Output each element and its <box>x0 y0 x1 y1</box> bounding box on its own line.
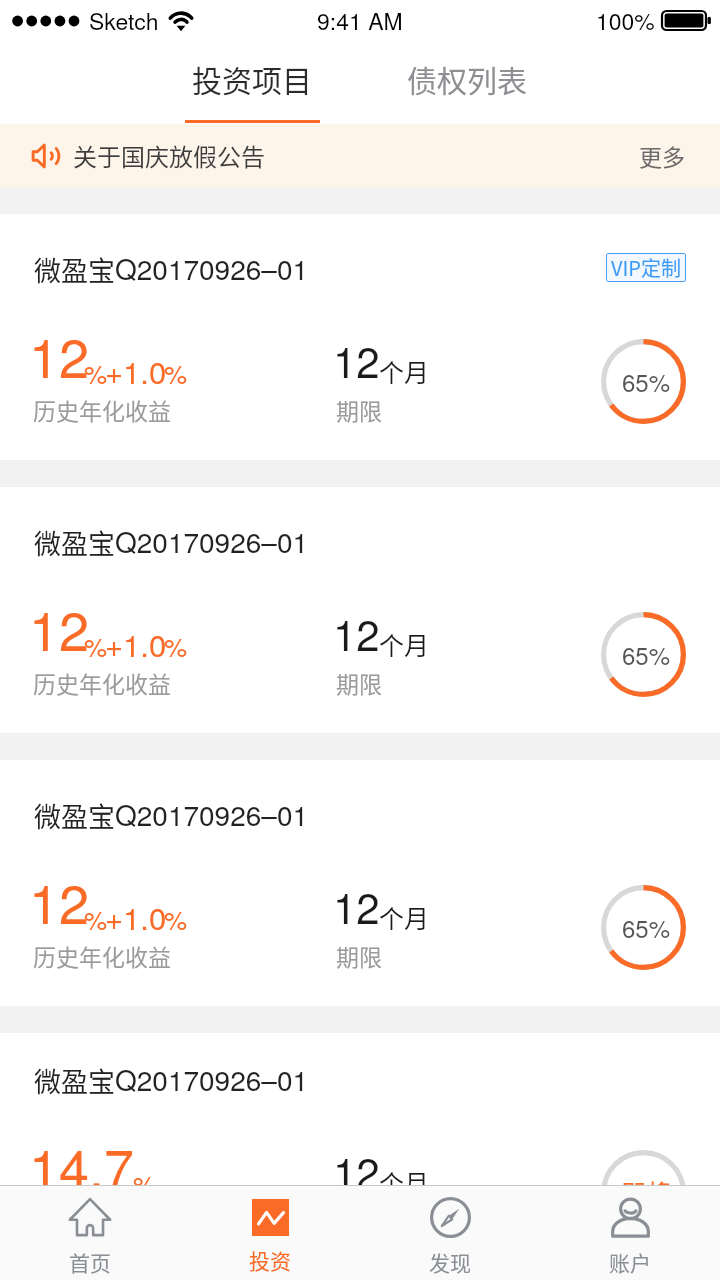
staticText: 更多 <box>639 139 685 172</box>
button[interactable]: 发现 <box>360 1186 540 1280</box>
staticText: +1.0 <box>105 894 167 938</box>
staticText: Q20170926–01 <box>115 248 309 288</box>
staticText: 个月 <box>379 353 430 389</box>
staticText: 微盈宝 <box>34 1061 115 1100</box>
staticText: 期限 <box>336 939 382 972</box>
staticText: 个月 <box>379 1164 430 1200</box>
button[interactable]: 微盈宝 <box>0 760 720 1006</box>
staticText: 9:41 AM <box>317 4 403 37</box>
staticText: Q20170926–01 <box>115 794 309 834</box>
staticText: 历史年化收益 <box>33 939 171 972</box>
button[interactable]: VIP定制 <box>606 253 686 282</box>
staticText: % <box>164 354 188 391</box>
button[interactable]: 关于国庆放假公告 <box>0 124 720 187</box>
staticText: 债权列表 <box>407 57 527 100</box>
staticText: % <box>164 900 188 937</box>
staticText: Sketch <box>89 4 159 37</box>
staticText: 12 <box>333 330 380 390</box>
staticText: 12 <box>29 589 90 666</box>
staticText: 65% <box>622 637 671 671</box>
staticText: % <box>164 627 188 664</box>
button[interactable]: 微盈宝 <box>0 487 720 733</box>
other: 首页 <box>69 1197 111 1238</box>
button[interactable]: 首页 <box>0 1186 180 1280</box>
staticText: 历史年化收益 <box>33 1204 171 1237</box>
button[interactable]: 微盈宝 <box>0 1033 720 1185</box>
button[interactable]: 账户 <box>540 1186 720 1280</box>
staticText: 期限 <box>336 666 382 699</box>
staticText: 发现 <box>429 1247 471 1277</box>
staticText: 首页 <box>69 1247 111 1277</box>
staticText: 12 <box>29 316 90 393</box>
staticText: 微盈宝 <box>34 523 115 562</box>
staticText: 12 <box>333 603 380 663</box>
staticText: 期限 <box>336 393 382 426</box>
staticText: 投资 <box>249 1245 291 1275</box>
staticText: Q20170926–01 <box>115 1059 309 1099</box>
staticText: 账户 <box>609 1247 651 1277</box>
staticText: 历史年化收益 <box>33 393 171 426</box>
staticText: % <box>84 627 108 664</box>
other: 发现 <box>430 1197 471 1238</box>
button[interactable]: 投资 <box>180 1186 360 1280</box>
staticText: +1.0 <box>105 348 167 392</box>
button[interactable]: 债权列表 <box>352 40 582 124</box>
other: 账户 <box>610 1197 651 1238</box>
staticText: 12 <box>29 862 90 939</box>
staticText: 65% <box>622 364 671 398</box>
staticText: +1.0 <box>105 621 167 665</box>
staticText: 个月 <box>379 626 430 662</box>
staticText: 微盈宝 <box>34 250 115 289</box>
staticText: % <box>84 900 108 937</box>
staticText: 100% <box>596 4 655 37</box>
staticText: % <box>133 1165 157 1202</box>
staticText: 12 <box>333 1141 380 1201</box>
staticText: Q20170926–01 <box>115 521 309 561</box>
staticText: 65% <box>622 910 671 944</box>
staticText: 微盈宝 <box>34 796 115 835</box>
staticText: 个月 <box>379 899 430 935</box>
staticText: 14.7 <box>29 1127 135 1204</box>
staticText: 关于国庆放假公告 <box>73 138 265 173</box>
button[interactable]: 投资项目 <box>137 40 367 124</box>
staticText: VIP定制 <box>611 253 682 282</box>
staticText: 历史年化收益 <box>33 666 171 699</box>
button[interactable]: 微盈宝 <box>0 214 720 460</box>
other: 投资 <box>252 1199 289 1236</box>
staticText: % <box>84 354 108 391</box>
staticText: 投资项目 <box>192 57 312 100</box>
staticText: 12 <box>333 876 380 936</box>
staticText: 即将 <box>621 1174 672 1210</box>
